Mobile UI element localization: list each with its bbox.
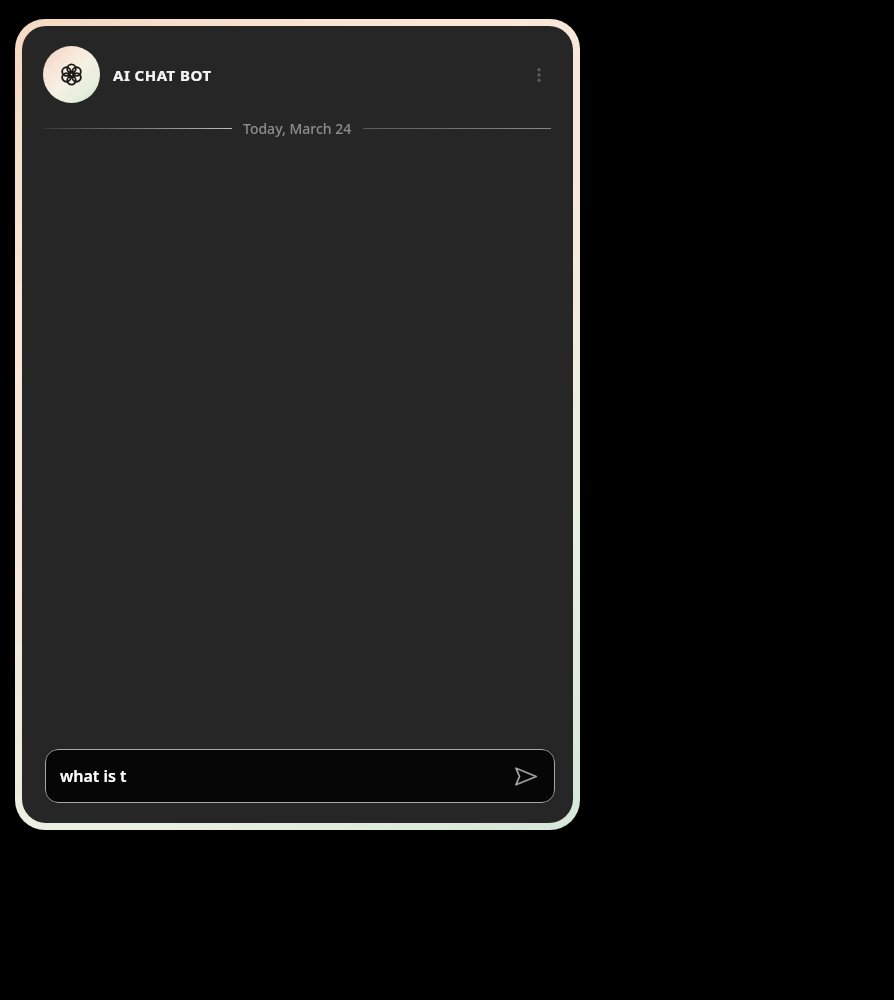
button[interactable]: Send [508,759,542,793]
staticText: what is t [60,765,127,787]
button[interactable]: AI Chat Bot avatar [43,46,100,103]
button[interactable]: More options [521,57,557,93]
button[interactable]: what is t [45,749,555,803]
staticText: AI CHAT BOT [113,65,212,85]
staticText: Today, March 24 [243,119,352,138]
